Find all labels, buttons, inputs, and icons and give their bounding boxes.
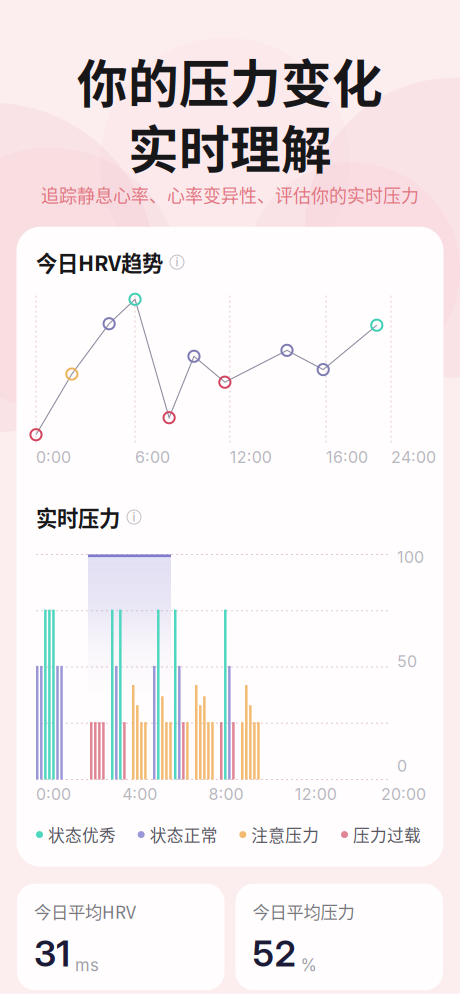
staticText: 今日HRV趋势	[36, 247, 163, 278]
staticText: 20:00	[381, 784, 426, 804]
staticText: 6:00	[135, 448, 170, 467]
staticText: 100	[397, 547, 424, 567]
staticText: %	[300, 955, 316, 975]
staticText: 0:00	[36, 448, 71, 467]
staticText: 追踪静息心率、心率变异性、评估你的实时压力	[41, 182, 419, 208]
staticText: 实时理解	[128, 110, 332, 183]
button[interactable]: 说明	[127, 510, 141, 524]
staticText: 31	[34, 932, 70, 975]
button[interactable]: 说明	[170, 255, 184, 269]
staticText: 12:00	[230, 448, 272, 467]
staticText: 50	[397, 652, 417, 671]
staticText: 12:00	[295, 784, 337, 804]
button[interactable]: 今日平均压力	[235, 884, 443, 990]
staticText: 8:00	[208, 784, 243, 804]
staticText: 状态优秀	[48, 822, 116, 847]
staticText: 你的压力变化	[77, 44, 383, 117]
staticText: 压力过载	[353, 822, 421, 847]
staticText: 今日平均HRV	[34, 899, 136, 924]
staticText: ms	[75, 955, 99, 975]
staticText: 今日平均压力	[252, 899, 354, 924]
staticText: 24:00	[391, 448, 436, 467]
staticText: i	[132, 510, 135, 524]
staticText: 注意压力	[251, 822, 319, 847]
staticText: 实时压力	[36, 502, 120, 532]
staticText: 52	[252, 932, 295, 975]
staticText: 0:00	[36, 784, 71, 804]
staticText: 4:00	[122, 784, 157, 804]
staticText: 0	[397, 756, 407, 775]
staticText: 状态正常	[150, 822, 218, 847]
staticText: 16:00	[326, 448, 368, 467]
button[interactable]: 今日平均HRV	[17, 884, 224, 990]
staticText: i	[175, 255, 178, 269]
